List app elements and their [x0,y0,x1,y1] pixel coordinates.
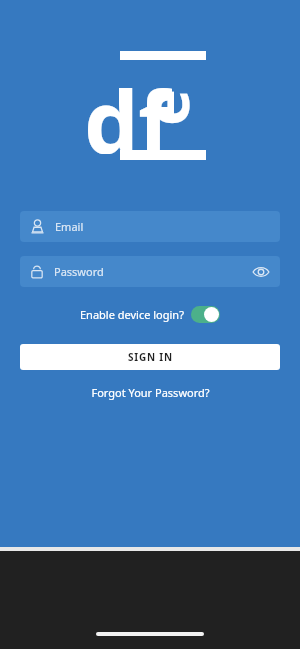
staticText: df [84,62,172,154]
staticText: Forgot Your Password? [91,385,210,400]
staticText: SIGN IN [128,350,173,364]
button[interactable]: Show password [250,261,272,283]
staticText: ega [123,80,217,126]
button[interactable]: Forgot Your Password? [83,383,218,402]
staticText: Password [54,264,104,279]
button[interactable]: SIGN IN [20,344,280,370]
button[interactable]: Enable device login toggle [191,306,220,323]
staticText: Email [55,219,84,234]
button[interactable]: Email [20,211,280,242]
staticText: Enable device login? [80,307,184,322]
button[interactable]: Password [20,256,280,287]
